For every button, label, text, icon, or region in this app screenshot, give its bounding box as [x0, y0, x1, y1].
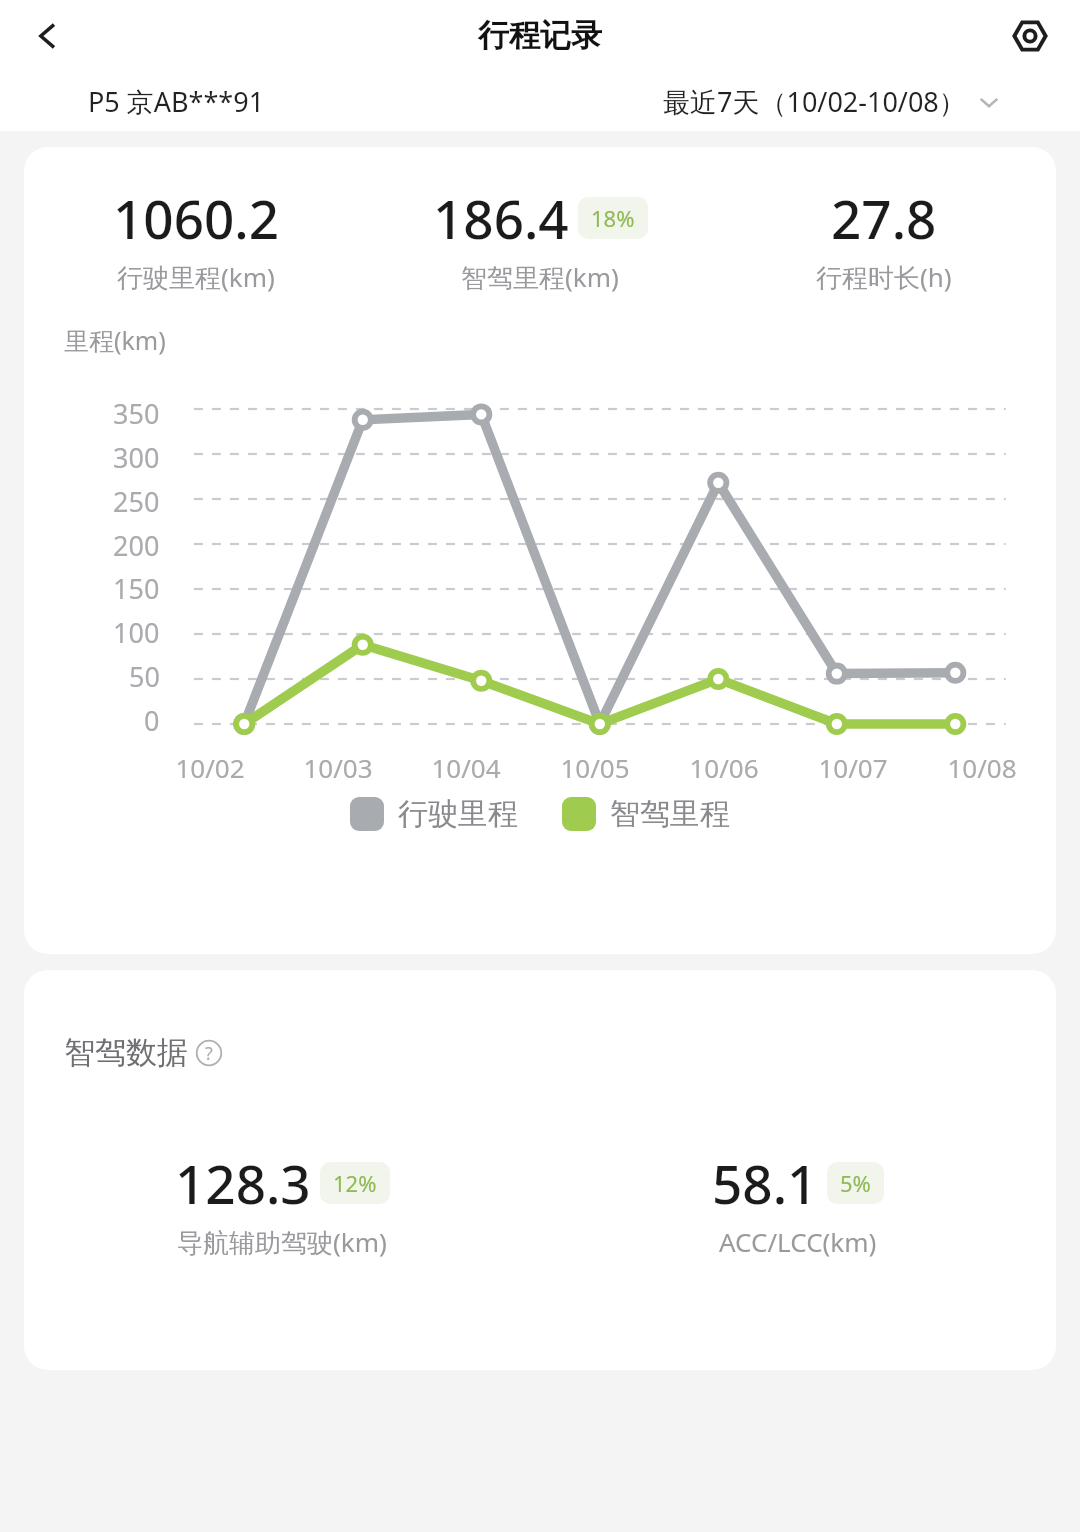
staticText: 1060.2: [113, 182, 279, 254]
staticText: 行驶里程(km): [117, 259, 275, 295]
staticText: 58.1: [712, 1147, 818, 1219]
staticText: 智驾里程(km): [461, 259, 619, 295]
staticText: 10/03: [303, 750, 373, 785]
staticText: 0: [144, 702, 160, 739]
staticText: 27.8: [831, 182, 937, 254]
staticText: 导航辅助驾驶(km): [177, 1224, 387, 1260]
staticText: 100: [113, 614, 160, 651]
staticText: 250: [113, 483, 160, 520]
staticText: 186.4: [433, 182, 569, 254]
button[interactable]: Back: [22, 10, 74, 62]
staticText: 10/04: [431, 750, 501, 785]
staticText: 智驾里程: [610, 795, 730, 833]
staticText: 18%: [591, 203, 635, 233]
staticText: 50: [129, 658, 160, 695]
other: Help: [194, 1038, 224, 1068]
staticText: 128.3: [175, 1147, 311, 1219]
button[interactable]: Settings: [1002, 8, 1058, 64]
button[interactable]: 智驾数据: [64, 1033, 224, 1072]
staticText: 行程时长(h): [816, 259, 952, 295]
staticText: 10/02: [175, 750, 245, 785]
staticText: 200: [113, 527, 160, 564]
staticText: ACC/LCC(km): [719, 1224, 877, 1259]
staticText: 10/08: [947, 750, 1017, 785]
staticText: 智驾数据: [64, 1033, 188, 1072]
staticText: ?: [205, 1041, 213, 1066]
staticText: 行程记录: [478, 16, 602, 55]
staticText: 10/07: [818, 750, 888, 785]
staticText: 5%: [840, 1168, 871, 1198]
staticText: 最近7天（10/02-10/08）: [663, 83, 966, 120]
staticText: 350: [113, 395, 160, 432]
staticText: 12%: [333, 1168, 377, 1198]
button[interactable]: 最近7天（10/02-10/08）: [663, 83, 1002, 120]
staticText: 300: [113, 439, 160, 476]
staticText: P5 京AB***91: [88, 83, 265, 120]
staticText: 10/06: [689, 750, 759, 785]
staticText: 10/05: [560, 750, 630, 785]
staticText: 里程(km): [64, 323, 166, 357]
staticText: 行驶里程: [398, 795, 518, 833]
staticText: 150: [113, 570, 160, 607]
